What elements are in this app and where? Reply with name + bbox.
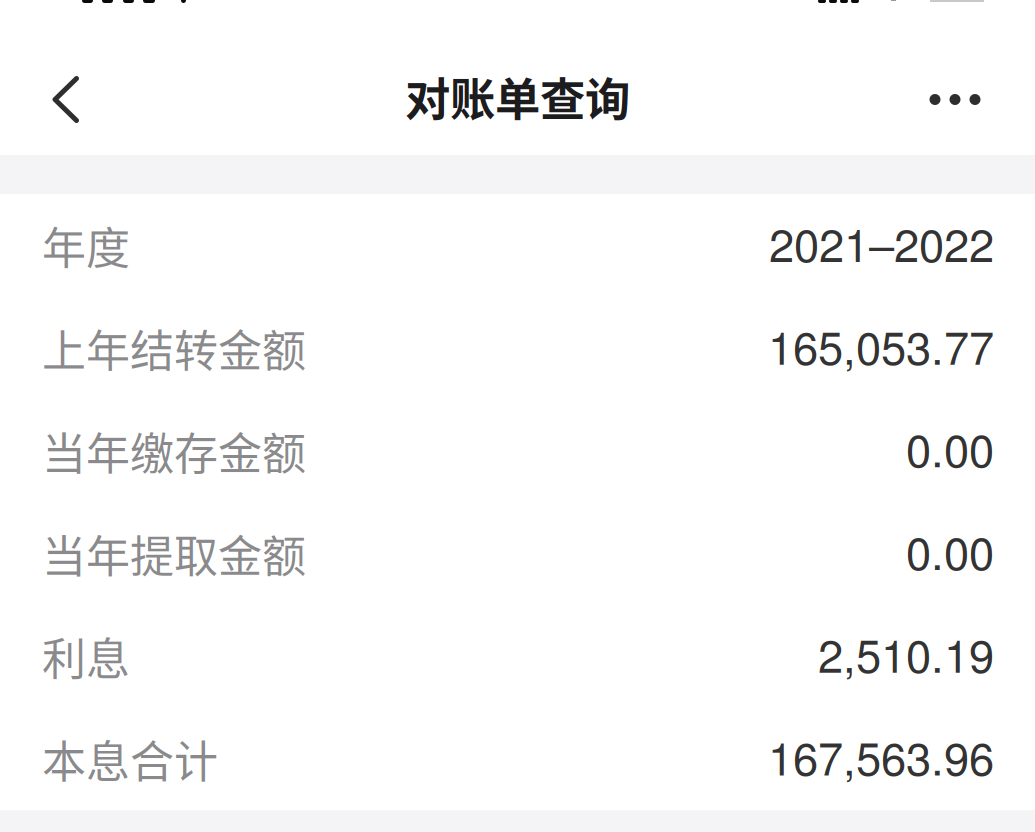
button[interactable]: Back xyxy=(20,53,112,145)
staticText: 当年缴存金额 xyxy=(42,419,306,483)
button[interactable]: More options xyxy=(909,53,1001,145)
staticText: 对账单查询 xyxy=(405,64,630,129)
staticText: 当年提取金额 xyxy=(42,522,306,585)
staticText: 167,563.96 xyxy=(768,723,994,788)
staticText: 0.00 xyxy=(906,415,994,480)
staticText: 年度 xyxy=(42,213,130,277)
staticText: 本息合计 xyxy=(42,727,218,791)
staticText: 上年结转金额 xyxy=(42,316,306,380)
staticText: 165,053.77 xyxy=(768,313,994,377)
staticText: 2,510.19 xyxy=(818,621,994,686)
staticText: 2021–2022 xyxy=(769,210,994,275)
staticText: 利息 xyxy=(42,624,130,688)
staticText: 0.00 xyxy=(906,518,994,583)
